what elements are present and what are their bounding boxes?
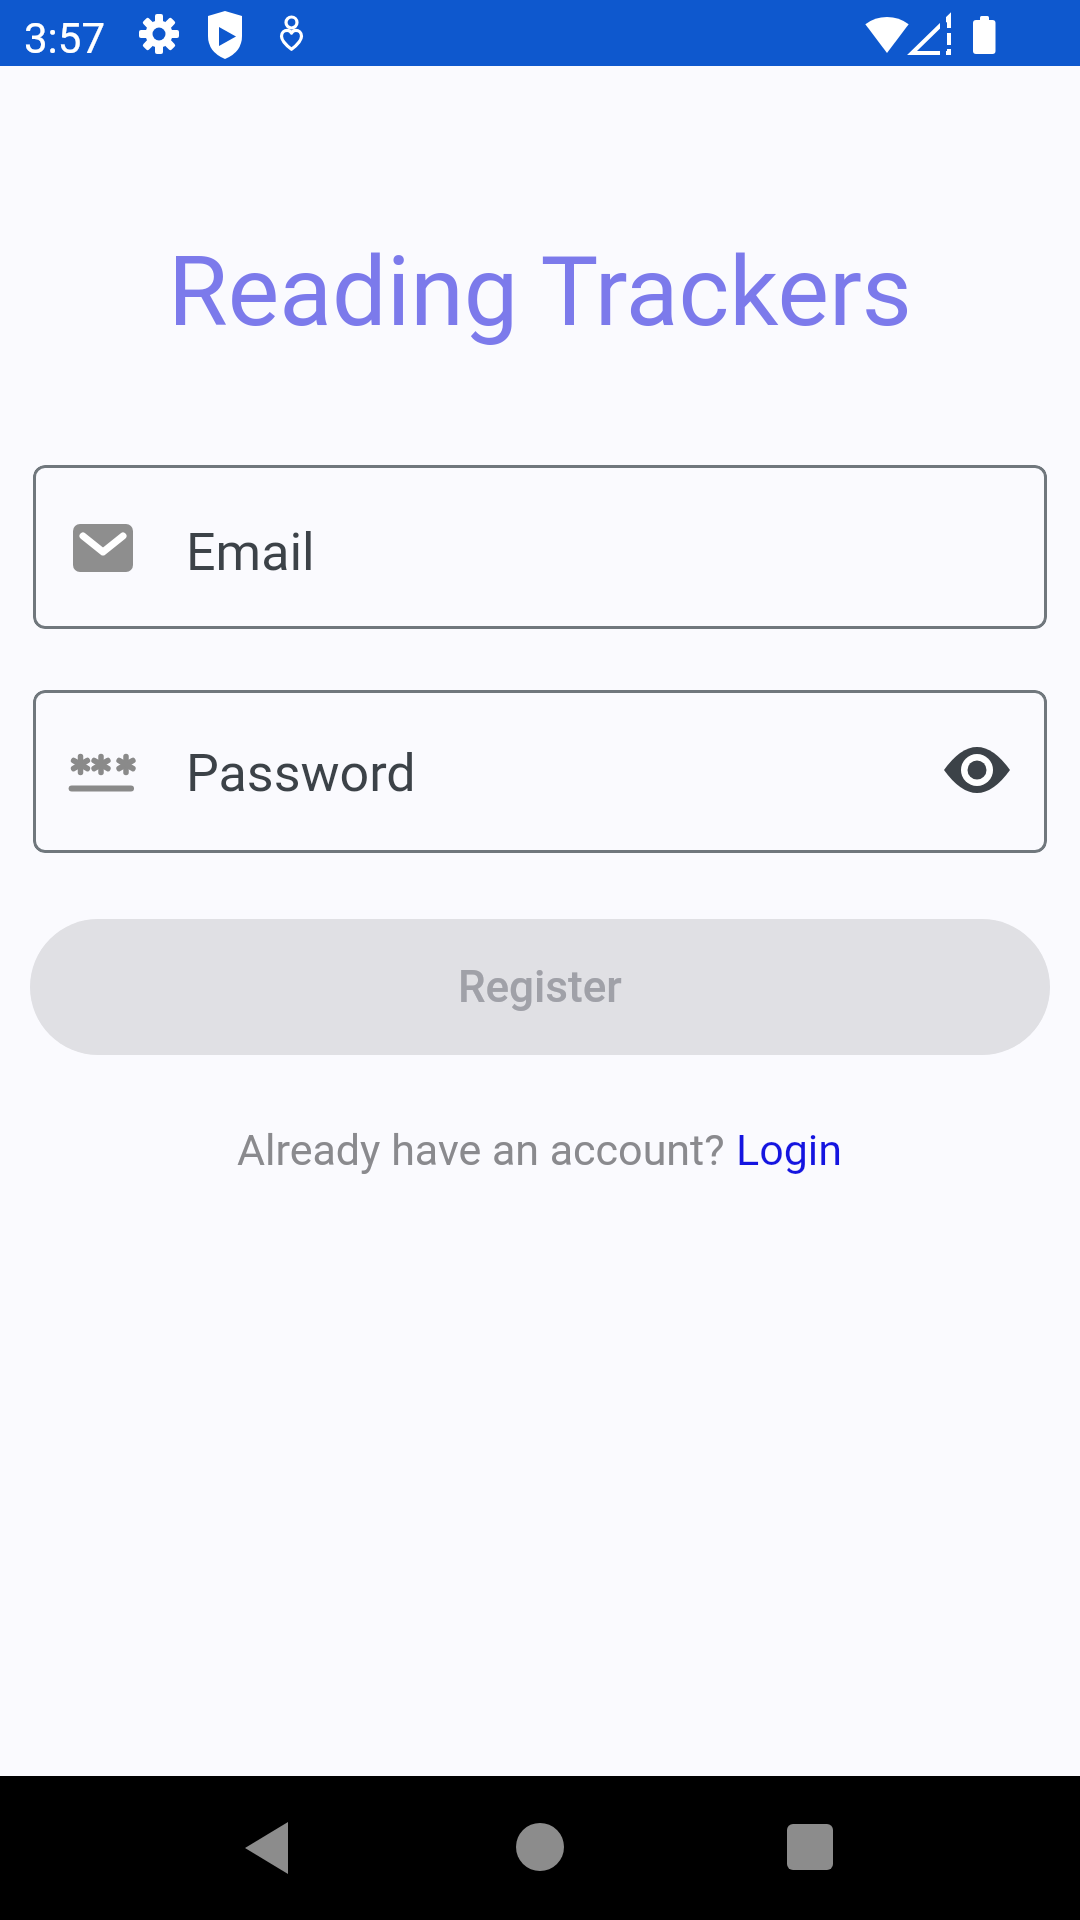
staticText: Login xyxy=(736,1125,843,1175)
button[interactable]: Email xyxy=(33,465,1047,629)
staticText: Email xyxy=(186,522,315,583)
staticText: Reading Trackers xyxy=(168,235,912,349)
staticText: Register xyxy=(458,961,622,1013)
button[interactable] xyxy=(492,1800,588,1896)
button[interactable]: Register xyxy=(30,919,1050,1055)
staticText: Already have an account? xyxy=(237,1125,736,1175)
button[interactable]: Password xyxy=(33,690,1047,853)
button[interactable] xyxy=(762,1800,858,1896)
button[interactable]: Login xyxy=(736,1125,843,1175)
staticText: 3:57 xyxy=(24,14,105,63)
staticText: Password xyxy=(186,743,416,804)
button[interactable] xyxy=(222,1800,318,1896)
